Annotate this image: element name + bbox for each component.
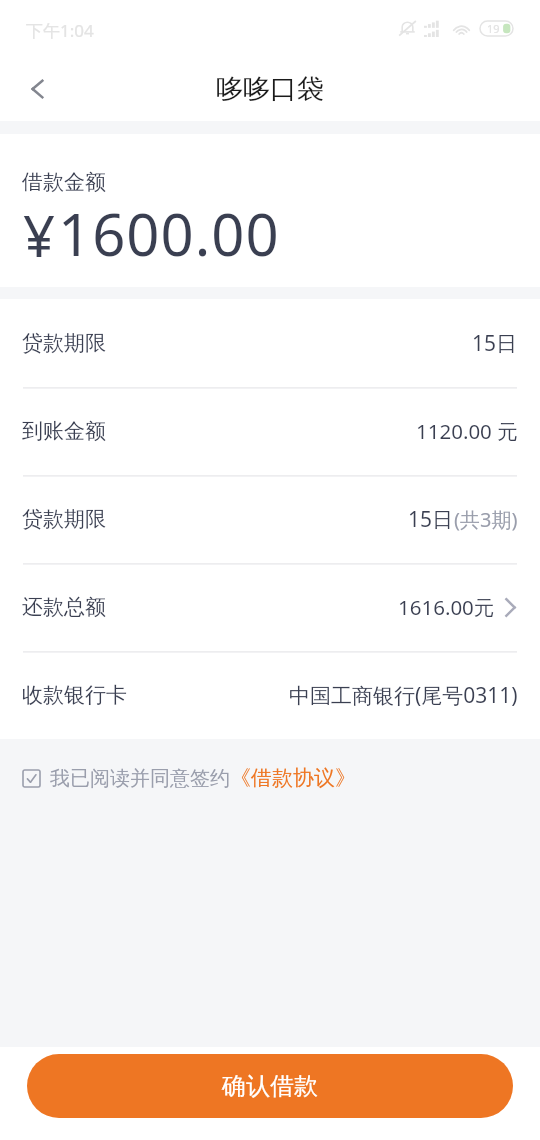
staticText: (共3期): [454, 506, 518, 533]
staticText: 还款总额: [22, 594, 106, 620]
staticText: 1616.00元: [398, 593, 495, 621]
button[interactable]: 还款总额: [0, 563, 540, 651]
button[interactable]: Back: [0, 59, 60, 119]
staticText: ¥: [23, 197, 56, 273]
button[interactable]: 贷款期限: [0, 299, 540, 387]
staticText: 确认借款: [222, 1071, 318, 1101]
staticText: 贷款期限: [22, 506, 106, 532]
staticText: 19: [487, 21, 500, 36]
staticText: 1120.00 元: [416, 417, 518, 445]
staticText: 中国工商银行(尾号0311): [289, 681, 518, 710]
staticText: 1600.00: [58, 194, 280, 273]
button[interactable]: 《借款协议》: [230, 765, 356, 791]
button[interactable]: 收款银行卡: [0, 651, 540, 739]
staticText: 哆哆口袋: [216, 72, 324, 106]
button[interactable]: 我已阅读并同意签约: [23, 766, 230, 791]
staticText: 下午1:04: [26, 19, 94, 42]
button[interactable]: 到账金额: [0, 387, 540, 475]
staticText: 我已阅读并同意签约: [50, 766, 230, 791]
button[interactable]: 贷款期限: [0, 475, 540, 563]
staticText: 借款金额: [22, 169, 106, 195]
staticText: 15日: [408, 505, 454, 534]
staticText: 15日: [472, 329, 518, 358]
staticText: 贷款期限: [22, 330, 106, 356]
staticText: 收款银行卡: [22, 682, 127, 708]
button[interactable]: 确认借款: [27, 1054, 513, 1118]
staticText: 到账金额: [22, 418, 106, 444]
